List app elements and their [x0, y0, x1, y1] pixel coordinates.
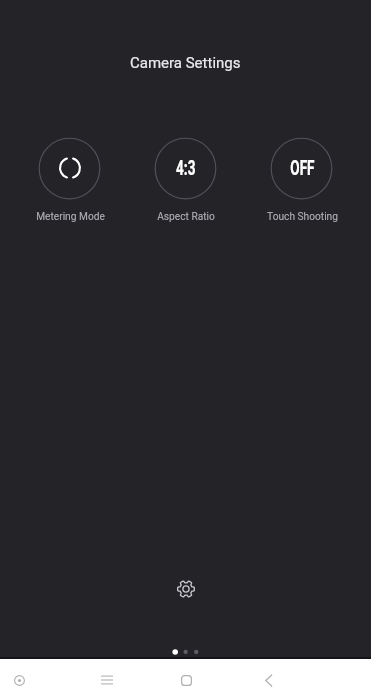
button[interactable]: Back — [255, 666, 283, 694]
staticText: Touch Shooting — [267, 211, 338, 223]
staticText: Aspect Ratio — [157, 211, 215, 223]
button[interactable]: More settings — [166, 569, 206, 609]
button[interactable]: Metering Mode — [12, 137, 128, 223]
button[interactable]: Screen recorder — [5, 666, 33, 694]
staticText: Metering Mode — [36, 211, 105, 223]
button[interactable]: Recent apps — [93, 666, 121, 694]
button[interactable]: 4:3 — [128, 137, 244, 223]
staticText: 4:3 — [176, 156, 196, 180]
button[interactable]: OFF — [244, 137, 360, 223]
button[interactable]: Home — [172, 666, 200, 694]
staticText: OFF — [290, 156, 315, 180]
staticText: Camera Settings — [130, 54, 241, 72]
